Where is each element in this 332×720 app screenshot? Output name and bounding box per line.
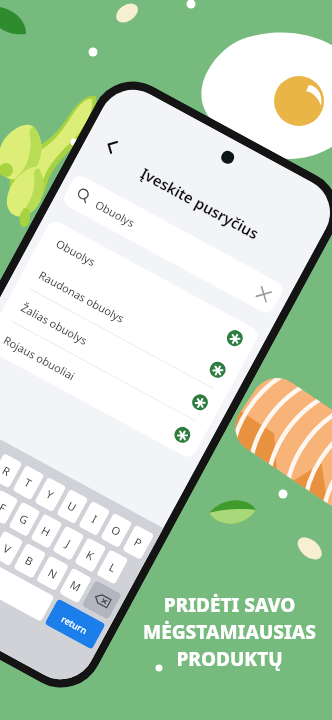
staticText: H [39,522,54,540]
staticText: R [0,462,13,479]
button[interactable]: Clear [247,277,280,310]
button[interactable]: E [0,441,1,476]
button[interactable] [0,533,55,622]
staticText: J [63,536,74,551]
staticText: B [23,552,37,569]
staticText: return [60,612,90,636]
button[interactable]: V [0,530,24,566]
button[interactable]: Add [189,391,211,413]
staticText: Obuolys [53,236,98,269]
button[interactable]: T [12,465,44,500]
staticText: I [89,511,100,526]
button[interactable]: G [8,501,41,537]
staticText: F [0,499,9,515]
button[interactable]: Back [95,130,128,162]
button[interactable]: R [0,453,22,488]
button[interactable]: O [100,513,132,548]
button[interactable]: Add [224,327,246,349]
staticText: Įveskite pusryčius [137,163,263,243]
staticText: K [84,547,97,563]
staticText: L [106,559,119,575]
button[interactable]: Žalias obuolys [0,282,226,429]
staticText: Žalias obuolys [19,300,91,348]
staticText: V [1,540,14,557]
button[interactable]: Raudonas obuolys [17,250,244,396]
button[interactable]: L [96,549,128,585]
button[interactable]: M [59,568,92,604]
button[interactable]: Backspace [82,580,122,620]
button[interactable]: P [122,524,154,560]
staticText: Raudonas obuolys [36,267,127,326]
button[interactable]: K [74,537,106,573]
button[interactable]: H [30,513,63,549]
staticText: Rojaus obuoliai [1,332,78,383]
staticText: T [22,474,35,491]
staticText: O [109,522,124,539]
staticText: M [67,577,83,595]
button[interactable]: Obuolys [60,173,286,316]
button[interactable]: I [78,501,110,536]
button[interactable]: C [0,518,1,554]
button[interactable]: Y [34,477,66,512]
button[interactable]: Obuolys [35,218,261,363]
button[interactable]: B [13,543,46,579]
staticText: Obuolys [93,197,138,230]
button[interactable]: F [0,489,19,525]
button[interactable]: Add [207,359,228,381]
staticText: Y [44,486,57,503]
button[interactable]: Add [171,424,193,446]
staticText: N [45,565,61,582]
button[interactable]: Rojaus obuoliai [0,315,208,460]
button[interactable]: return [44,598,106,650]
staticText: PRIDĖTI SAVO MĖGSTAMIAUSIAS PRODUKTŲ [143,592,316,672]
staticText: G [17,510,32,528]
button[interactable]: J [52,525,84,561]
button[interactable]: N [36,555,69,591]
button[interactable]: U [56,489,88,524]
staticText: P [132,534,145,550]
staticText: U [65,498,80,515]
